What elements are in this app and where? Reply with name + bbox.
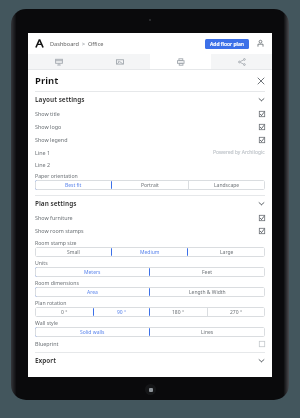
button[interactable]: Feet <box>150 267 265 277</box>
staticText: Length & Width <box>189 289 226 296</box>
staticText: Show legend <box>35 136 259 143</box>
button[interactable]: Landscape <box>189 180 265 190</box>
staticText: Solid walls <box>80 329 105 336</box>
staticText: Room stamp size <box>35 239 77 246</box>
staticText: > <box>82 40 85 47</box>
button[interactable]: Large <box>188 247 265 257</box>
button[interactable]: Meters <box>35 267 150 277</box>
staticText: Landscape <box>214 182 240 189</box>
button[interactable]: Medium <box>111 247 188 257</box>
staticText: Layout settings <box>35 95 258 104</box>
staticText: Plan rotation <box>35 299 67 306</box>
button[interactable]: Show legend <box>28 133 272 146</box>
staticText: Show furniture <box>35 214 259 221</box>
button[interactable]: Home <box>145 384 156 395</box>
button[interactable]: Archilogic home <box>34 38 45 49</box>
button[interactable]: Blueprint <box>28 337 272 350</box>
button[interactable]: Images <box>89 54 150 69</box>
staticText: Show title <box>35 110 259 117</box>
staticText: Office <box>88 40 104 48</box>
button[interactable]: Line 1 <box>28 146 272 158</box>
button[interactable]: Area <box>35 287 150 297</box>
staticText: Add floor plan <box>210 41 244 48</box>
button[interactable]: 180 ° <box>150 307 207 317</box>
staticText: Dashboard <box>50 40 79 48</box>
button[interactable]: Solid walls <box>35 327 150 337</box>
button[interactable]: Layout settings <box>28 92 272 107</box>
staticText: Plan settings <box>35 199 258 208</box>
staticText: Line 2 <box>35 161 265 168</box>
button[interactable]: Plan settings <box>28 196 272 211</box>
button[interactable]: Portrait <box>112 180 188 190</box>
staticText: Line 1 <box>35 149 213 156</box>
button[interactable]: Share <box>211 54 272 69</box>
button[interactable]: Line 2 <box>28 158 272 170</box>
staticText: Print <box>35 74 256 87</box>
button[interactable]: Best fit <box>35 180 112 190</box>
button[interactable]: 0 ° <box>35 307 93 317</box>
staticText: Blueprint <box>35 340 259 347</box>
button[interactable]: 270 ° <box>208 307 265 317</box>
staticText: Small <box>67 249 80 256</box>
staticText: 90 ° <box>117 309 127 316</box>
button[interactable]: Small <box>35 247 111 257</box>
button[interactable]: Close <box>256 76 265 85</box>
button[interactable]: Print <box>150 54 211 69</box>
staticText: Best fit <box>65 182 82 189</box>
staticText: 180 ° <box>172 309 185 316</box>
staticText: Show room stamps <box>35 227 259 234</box>
staticText: Export <box>35 356 258 365</box>
staticText: Area <box>87 289 98 296</box>
button[interactable]: Lines <box>150 327 265 337</box>
staticText: Paper orientation <box>35 172 78 179</box>
staticText: 270 ° <box>230 309 243 316</box>
staticText: Powered by Archilogic <box>213 149 265 156</box>
staticText: Wall style <box>35 319 58 326</box>
staticText: 0 ° <box>61 309 68 316</box>
button[interactable]: Add floor plan <box>205 39 249 49</box>
staticText: Feet <box>202 269 213 276</box>
button[interactable]: Export <box>28 353 272 368</box>
button[interactable]: Account <box>255 38 266 49</box>
staticText: Show logo <box>35 123 259 130</box>
staticText: Room dimensions <box>35 279 79 286</box>
staticText: Portrait <box>141 182 159 189</box>
staticText: Large <box>220 249 234 256</box>
button[interactable]: Length & Width <box>150 287 265 297</box>
staticText: Medium <box>140 249 160 256</box>
button[interactable]: Dashboard <box>28 54 89 69</box>
button[interactable]: Show title <box>28 107 272 120</box>
staticText: Meters <box>84 269 101 276</box>
button[interactable]: Show room stamps <box>28 224 272 237</box>
staticText: Lines <box>201 329 214 336</box>
button[interactable]: Show logo <box>28 120 272 133</box>
staticText: Units <box>35 259 48 266</box>
button[interactable]: 90 ° <box>93 307 150 317</box>
button[interactable]: Show furniture <box>28 211 272 224</box>
